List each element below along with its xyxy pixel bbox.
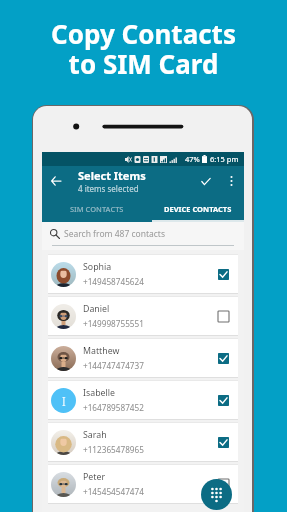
staticText: Search from 487 contacts bbox=[64, 228, 166, 240]
staticText: +144747474737 bbox=[83, 360, 144, 371]
button[interactable]: Back bbox=[47, 172, 65, 190]
staticText: 6:15 pm bbox=[210, 154, 239, 164]
button[interactable]: Confirm bbox=[197, 172, 215, 190]
button[interactable]: Sophia bbox=[48, 255, 238, 293]
staticText: +164789587452 bbox=[83, 402, 144, 413]
button[interactable]: SIM CONTACTS bbox=[42, 196, 152, 222]
staticText: Sarah bbox=[83, 429, 107, 441]
staticText: +149458745624 bbox=[83, 276, 144, 287]
button[interactable]: Select Matthew bbox=[217, 352, 230, 365]
staticText: Daniel bbox=[83, 303, 110, 315]
staticText: Select Items bbox=[78, 168, 146, 183]
staticText: 47% bbox=[185, 154, 200, 164]
staticText: +112365478965 bbox=[83, 444, 144, 455]
button[interactable]: Sarah bbox=[48, 423, 238, 461]
button[interactable]: Daniel bbox=[48, 297, 238, 335]
button[interactable]: Peter bbox=[48, 465, 238, 503]
button[interactable]: More options bbox=[224, 174, 238, 188]
staticText: SIM CONTACTS bbox=[70, 204, 124, 214]
staticText: Peter bbox=[83, 471, 106, 483]
button[interactable]: DEVICE CONTACTS bbox=[152, 196, 244, 222]
staticText: I bbox=[62, 393, 66, 409]
button[interactable]: Select Sophia bbox=[217, 268, 230, 281]
staticText: Isabelle bbox=[83, 387, 116, 399]
staticText: Copy Contacts to SIM Card bbox=[0, 16, 287, 82]
staticText: Sophia bbox=[83, 261, 112, 273]
button[interactable]: Select Sarah bbox=[217, 436, 230, 449]
staticText: DEVICE CONTACTS bbox=[164, 204, 232, 214]
staticText: Matthew bbox=[83, 345, 120, 357]
button[interactable]: Select Peter bbox=[217, 478, 230, 491]
button[interactable]: Select Isabelle bbox=[217, 394, 230, 407]
staticText: +149998755551 bbox=[83, 318, 144, 329]
button[interactable]: Select Daniel bbox=[217, 310, 230, 323]
button[interactable]: Matthew bbox=[48, 339, 238, 377]
staticText: 4 items selected bbox=[78, 183, 139, 194]
button[interactable]: I bbox=[48, 381, 238, 419]
button[interactable]: Dialpad bbox=[201, 479, 232, 510]
staticText: +145454547474 bbox=[83, 486, 144, 497]
